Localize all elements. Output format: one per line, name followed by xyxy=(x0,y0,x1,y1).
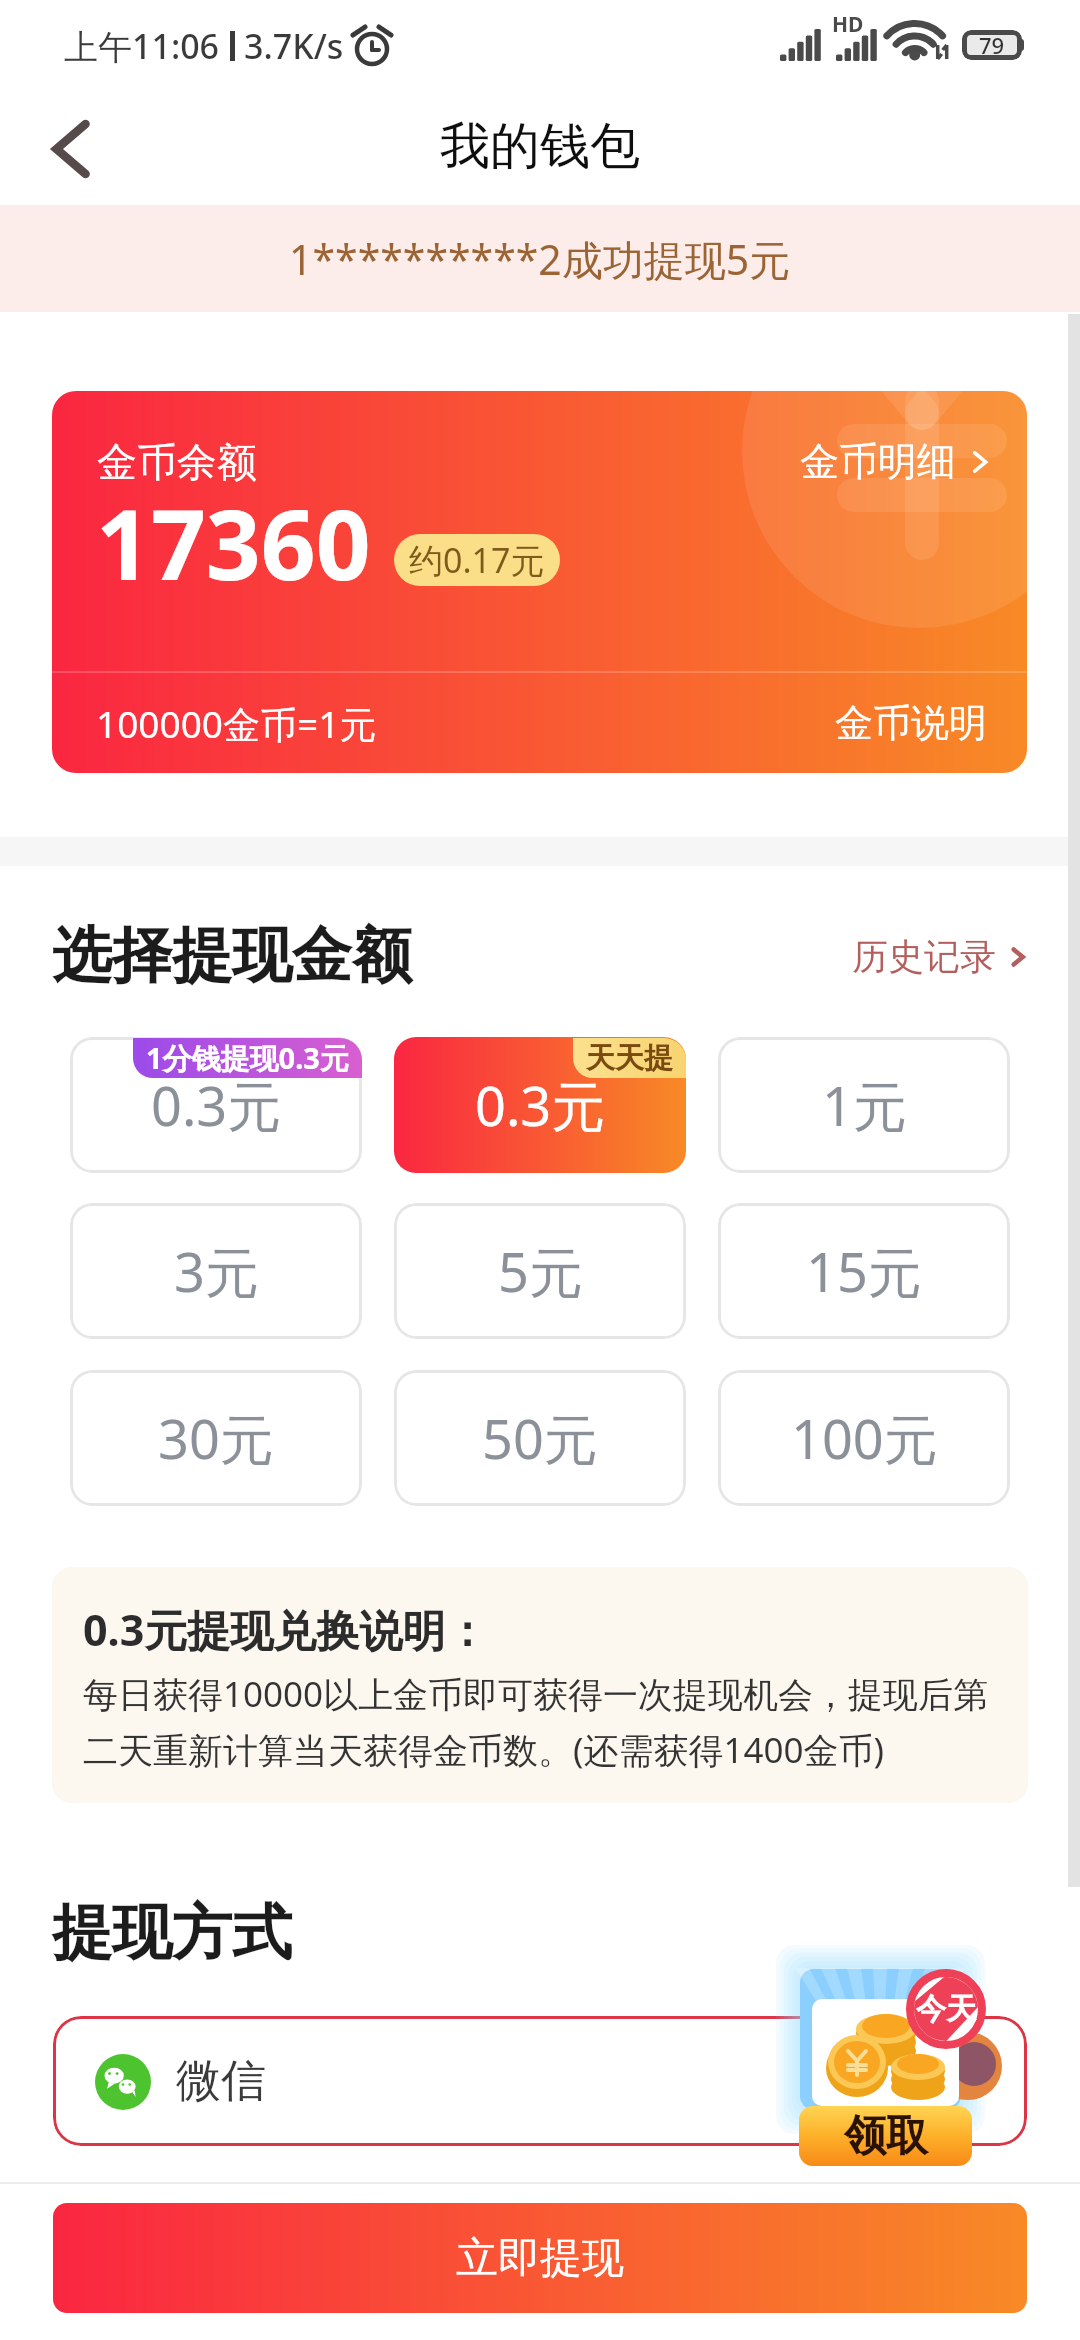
staticText: 提现方式 xyxy=(52,1895,292,1971)
staticText: 选择提现金额 xyxy=(52,918,412,994)
button[interactable]: 0.3元 xyxy=(394,1037,686,1173)
staticText: 0.3元提现兑换说明： xyxy=(83,1600,489,1659)
staticText: 1元 xyxy=(822,1068,907,1142)
staticText: 50元 xyxy=(482,1401,598,1475)
staticText: 0.3元 xyxy=(475,1068,606,1142)
button[interactable]: 领取 xyxy=(790,1960,1020,2170)
staticText: 历史记录 xyxy=(852,934,996,979)
staticText: 约0.17元 xyxy=(409,537,545,583)
staticText: 3元 xyxy=(174,1234,259,1308)
staticText: 3.7K/s xyxy=(244,23,344,69)
button[interactable]: 立即提现 xyxy=(53,2203,1027,2313)
button[interactable]: 15元 xyxy=(718,1203,1010,1339)
staticText: HD xyxy=(832,10,864,39)
button[interactable]: 50元 xyxy=(394,1370,686,1506)
button[interactable]: Back xyxy=(36,114,106,184)
staticText: 我的钱包 xyxy=(440,115,640,178)
staticText: 0.3元 xyxy=(151,1068,282,1142)
button[interactable]: 金币明细 xyxy=(800,429,992,494)
staticText: 15元 xyxy=(806,1234,922,1308)
staticText: 1**********2成功提现5元 xyxy=(289,231,791,287)
staticText: 17360 xyxy=(96,477,371,608)
staticText: 立即提现 xyxy=(456,2232,624,2285)
staticText: 每日获得10000以上金币即可获得一次提现机会，提现后第 二天重新计算当天获得金… xyxy=(83,1670,989,1773)
button[interactable]: 金币说明 xyxy=(835,691,987,755)
staticText: 金币明细 xyxy=(800,437,956,486)
staticText: 领取 xyxy=(844,2110,928,2163)
button[interactable]: 微信 xyxy=(53,2016,1027,2146)
staticText: 微信 xyxy=(176,2053,266,2110)
staticText: 30元 xyxy=(158,1401,274,1475)
staticText: 上午11:06 xyxy=(64,23,220,69)
button[interactable]: 历史记录 xyxy=(852,924,1028,989)
button[interactable]: 30元 xyxy=(70,1370,362,1506)
staticText: 5元 xyxy=(498,1234,583,1308)
staticText: 今天 xyxy=(916,1990,976,2028)
staticText: 100元 xyxy=(791,1401,938,1475)
staticText: 100000金币=1元 xyxy=(96,698,377,749)
button[interactable]: 100元 xyxy=(718,1370,1010,1506)
staticText: 79 xyxy=(979,30,1005,60)
staticText: 金币余额 xyxy=(97,437,257,487)
button[interactable]: 1元 xyxy=(718,1037,1010,1173)
button[interactable]: 0.3元 xyxy=(70,1037,362,1173)
button[interactable]: 5元 xyxy=(394,1203,686,1339)
staticText: 1分钱提现0.3元 xyxy=(146,1038,349,1078)
staticText: 金币说明 xyxy=(835,699,987,747)
staticText: 天天提 xyxy=(586,1040,673,1077)
button[interactable]: 3元 xyxy=(70,1203,362,1339)
